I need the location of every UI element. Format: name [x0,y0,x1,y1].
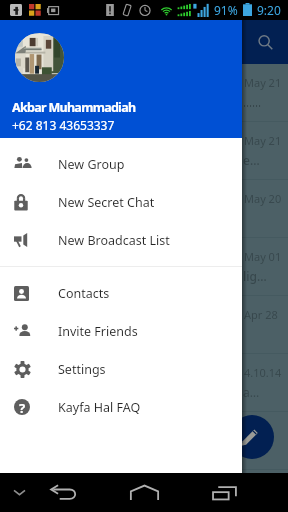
button[interactable]: May 21 [0,64,288,121]
button[interactable]: May 01 [0,238,288,295]
button[interactable]: May 21 [0,122,288,179]
button[interactable]: Invite Friends [0,312,242,350]
staticText: +62 813 43653337 [12,117,115,133]
staticText: May 20 [244,191,282,206]
button[interactable]: Home [120,473,168,512]
staticText: May 01 [244,249,282,264]
button[interactable]: New Secret Chat [0,183,242,221]
staticText: a… [243,384,260,400]
staticText: 4.10.14 [244,365,282,380]
button[interactable]: New Broadcast List [0,221,242,259]
staticText: ? [19,399,26,415]
staticText: Contacts [58,285,110,302]
staticText: lig… [243,268,267,284]
staticText: e… [243,152,260,168]
button[interactable]: Settings [0,350,242,388]
button[interactable]: Apr 28 [0,296,288,353]
staticText: 9:20 [257,2,281,18]
button[interactable]: ? [0,388,242,426]
button[interactable]: New Group [0,145,242,183]
staticText: New Group [58,156,125,173]
staticText: 91% [214,2,238,18]
button[interactable]: 4.10.14 [0,354,288,411]
button[interactable]: May 20 [0,180,288,237]
button[interactable]: Recents [202,473,248,512]
button[interactable]: New message [230,415,274,459]
staticText: Invite Friends [58,323,138,340]
staticText: Apr 28 [244,307,278,322]
staticText: New Secret Chat [58,194,155,211]
staticText: New Broadcast List [58,232,170,249]
staticText: Kayfa Hal FAQ [58,399,141,416]
staticText: Akbar Muhammadiah [12,99,136,116]
button[interactable] [0,412,288,469]
staticText: May 21 [244,133,282,148]
staticText: May 21 [244,75,282,90]
button[interactable]: Back [40,473,86,512]
button[interactable]: Contacts [0,274,242,312]
staticText: Settings [58,361,106,378]
button[interactable]: Hide keyboard [4,473,34,512]
button[interactable]: Search [250,27,280,57]
